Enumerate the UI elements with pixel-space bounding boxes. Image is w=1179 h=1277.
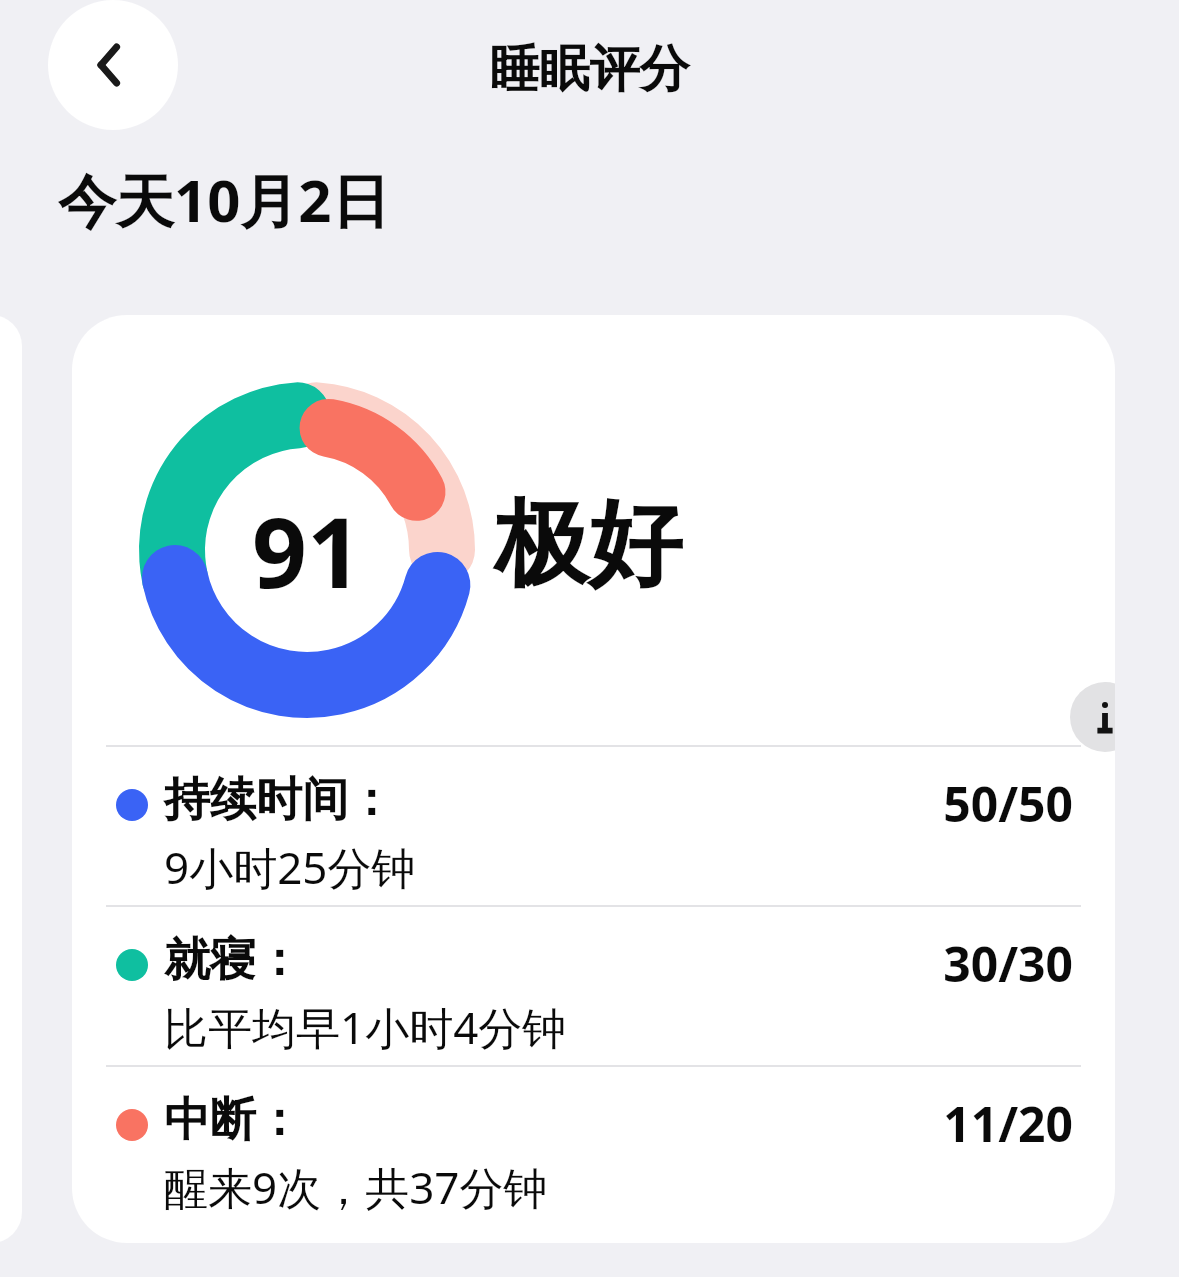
staticText: 就寝： bbox=[164, 931, 302, 989]
staticText: 91 bbox=[252, 485, 362, 616]
button[interactable]: Info bbox=[1070, 682, 1115, 752]
staticText: 9小时25分钟 bbox=[164, 837, 416, 897]
staticText: 今天10月2日 bbox=[58, 160, 390, 239]
staticText: 极好 bbox=[494, 485, 682, 603]
staticText: 持续时间： bbox=[164, 771, 394, 829]
button[interactable]: 持续时间： bbox=[106, 747, 1081, 905]
staticText: 50/50 bbox=[106, 771, 1073, 836]
staticText: 醒来9次，共37分钟 bbox=[164, 1157, 548, 1217]
button[interactable]: 中断： bbox=[106, 1067, 1081, 1225]
staticText: 睡眠评分 bbox=[0, 38, 1179, 101]
staticText: 11/20 bbox=[106, 1091, 1073, 1156]
button[interactable]: Back bbox=[48, 0, 178, 130]
button[interactable]: 就寝： bbox=[106, 907, 1081, 1065]
staticText: 中断： bbox=[164, 1091, 302, 1149]
staticText: 比平均早1小时4分钟 bbox=[164, 997, 567, 1057]
staticText: 30/30 bbox=[106, 931, 1073, 996]
